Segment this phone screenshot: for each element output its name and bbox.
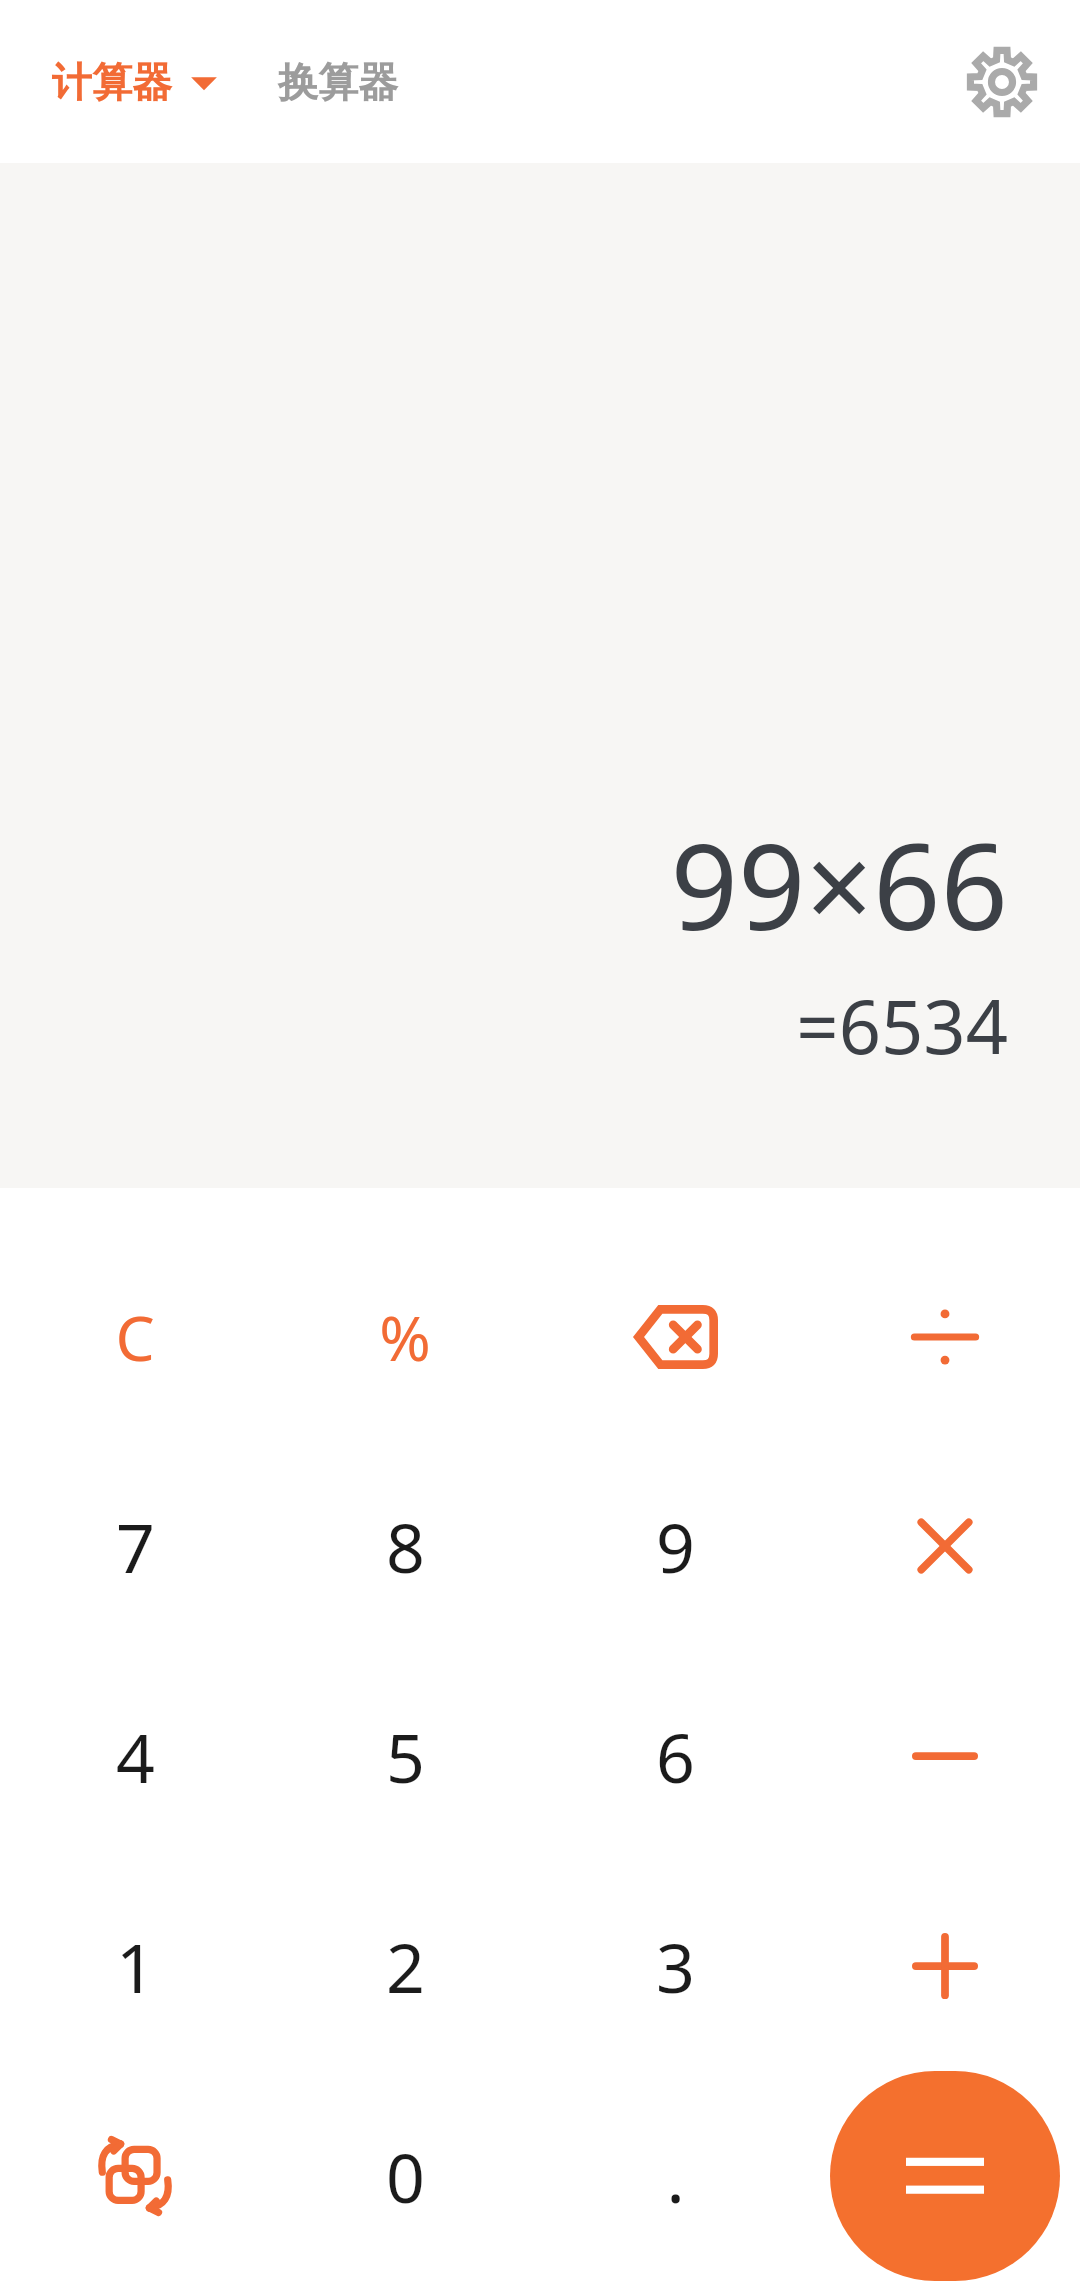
staticText: 0 [386,2130,425,2223]
staticText: 99×66 [670,804,1008,965]
button[interactable]: Settings [940,20,1064,144]
button[interactable]: Convert units [0,2071,270,2281]
button[interactable]: Multiply [810,1441,1080,1651]
staticText: 1 [116,1920,155,2013]
button[interactable]: 换算器 [272,41,404,123]
staticText: 6 [656,1710,695,1803]
button[interactable]: 3 [540,1861,810,2071]
staticText: =6534 [796,975,1008,1076]
staticText: 3 [656,1920,695,2013]
button[interactable]: Minus [810,1651,1080,1861]
button[interactable]: % [270,1232,540,1441]
button[interactable]: 5 [270,1651,540,1861]
staticText: 4 [116,1710,155,1803]
button[interactable]: 8 [270,1441,540,1651]
button[interactable]: C [0,1232,270,1441]
button[interactable]: 0 [270,2071,540,2281]
staticText: 7 [116,1500,155,1593]
staticText: 换算器 [278,57,398,107]
button[interactable]: Equals [830,2071,1060,2281]
staticText: . [666,2130,685,2223]
button[interactable]: 4 [0,1651,270,1861]
staticText: 2 [386,1920,425,2013]
button[interactable]: . [540,2071,810,2281]
button[interactable]: 9 [540,1441,810,1651]
staticText: 9 [656,1500,695,1593]
staticText: 5 [386,1710,425,1803]
button[interactable]: Backspace [540,1232,810,1441]
staticText: 计算器 [52,57,172,107]
button[interactable]: Plus [810,1861,1080,2071]
button[interactable]: 2 [270,1861,540,2071]
button[interactable]: Divide [810,1232,1080,1441]
button[interactable]: 6 [540,1651,810,1861]
button[interactable]: 7 [0,1441,270,1651]
staticText: C [115,1295,155,1379]
staticText: 8 [386,1500,425,1593]
staticText: % [379,1295,431,1379]
button[interactable]: 计算器 [46,41,224,123]
button[interactable]: 1 [0,1861,270,2071]
